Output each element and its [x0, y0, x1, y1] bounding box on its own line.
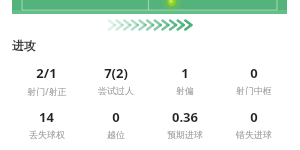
- staticText: 越位: [107, 129, 125, 140]
- button[interactable]: 2/1: [12, 64, 81, 97]
- staticText: 错失进球: [236, 129, 272, 140]
- staticText: 14: [39, 108, 54, 126]
- button[interactable]: 0: [219, 108, 288, 140]
- staticText: 2/1: [36, 64, 57, 82]
- button[interactable]: 0: [81, 108, 150, 140]
- other: Attack momentum: [108, 19, 192, 31]
- button[interactable]: 0.36: [150, 108, 219, 140]
- staticText: 射门中框: [236, 85, 272, 96]
- staticText: 1: [181, 64, 189, 82]
- staticText: 射门/射正: [27, 85, 67, 97]
- button[interactable]: 0: [219, 64, 288, 96]
- button[interactable]: 1: [150, 64, 219, 96]
- staticText: 7(2): [104, 64, 128, 82]
- staticText: 丢失球权: [29, 129, 65, 140]
- button[interactable]: 7(2): [81, 64, 150, 96]
- button[interactable]: 14: [12, 108, 81, 140]
- staticText: 射偏: [176, 85, 194, 96]
- staticText: 尝试过人: [98, 85, 134, 96]
- staticText: 0: [250, 108, 258, 126]
- staticText: 0: [250, 64, 258, 82]
- staticText: 预期进球: [167, 129, 203, 140]
- staticText: 0.36: [172, 108, 198, 126]
- staticText: 0: [112, 108, 120, 126]
- staticText: 进攻: [12, 38, 36, 53]
